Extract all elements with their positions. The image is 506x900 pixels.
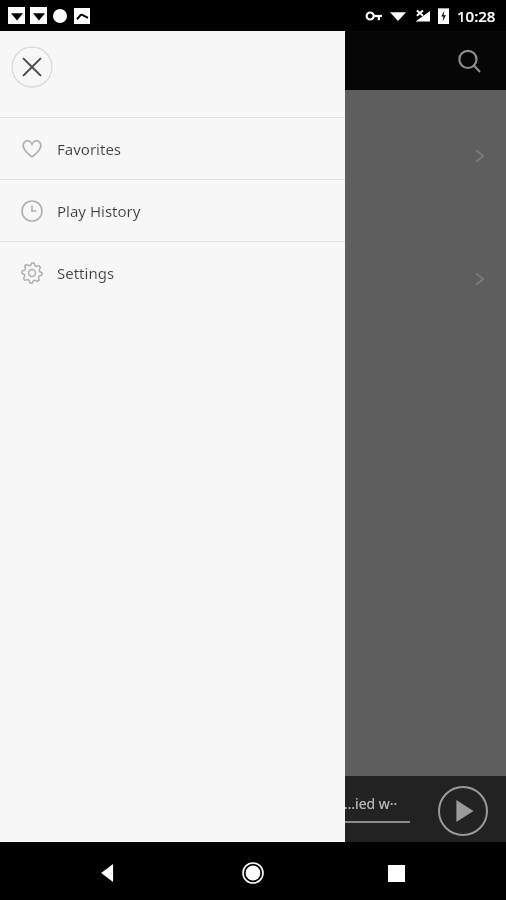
button[interactable]: Play History [0, 180, 345, 241]
staticText: Favorites [57, 139, 122, 159]
staticText: Play History [57, 201, 141, 221]
button[interactable]: Close [11, 46, 53, 88]
button[interactable]: …ied w·· [0, 776, 506, 842]
button[interactable]: Search [446, 38, 494, 86]
button[interactable]: Back [88, 853, 128, 893]
button[interactable]: Play [437, 785, 489, 837]
staticText: Settings [57, 263, 115, 283]
button[interactable]: Recents [376, 853, 416, 893]
button[interactable]: Settings [0, 242, 345, 303]
staticText: 10:28 [457, 6, 496, 26]
button[interactable]: Home [233, 853, 273, 893]
button[interactable]: Favorites [0, 118, 345, 179]
staticText: …ied w·· [344, 794, 398, 813]
